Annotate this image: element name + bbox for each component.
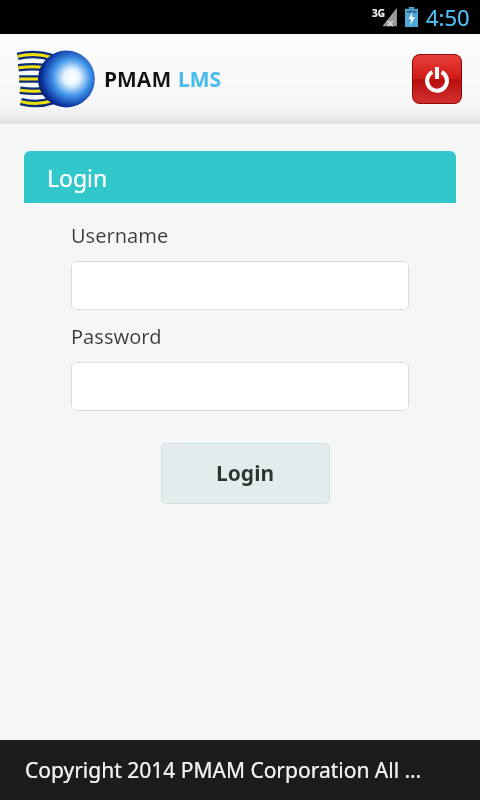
staticText: 3G	[372, 6, 385, 20]
button[interactable]: Login	[161, 443, 330, 504]
staticText: Copyright 2014 PMAM Corporation All …	[25, 756, 422, 785]
staticText: PMAM	[104, 65, 172, 94]
staticText: Username	[71, 222, 169, 249]
button[interactable]	[71, 362, 409, 411]
staticText: Login	[216, 459, 275, 488]
staticText: Login	[47, 162, 108, 193]
button[interactable]: Log out	[412, 54, 462, 104]
staticText: 4:50	[426, 2, 470, 32]
staticText: Password	[71, 323, 162, 350]
button[interactable]	[71, 261, 409, 310]
staticText: LMS	[178, 65, 222, 94]
